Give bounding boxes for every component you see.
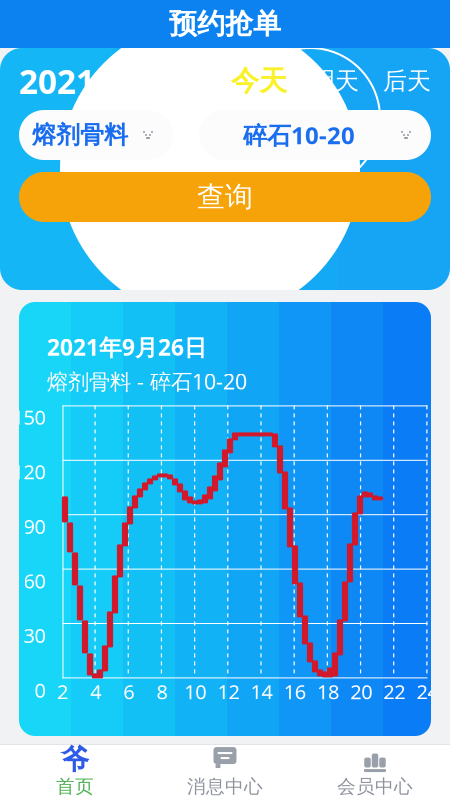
staticText: 14 [251,678,273,705]
button[interactable]: 碎石10-20 [199,110,431,160]
button[interactable]: 会员中心 [300,745,450,800]
staticText: 会员中心 [337,775,413,798]
staticText: 6 [123,678,134,705]
staticText: 16 [284,678,306,705]
staticText: 120 [12,458,45,485]
button[interactable]: 查询 [19,172,431,222]
staticText: 20 [350,678,372,705]
staticText: 熔剂骨料 [32,120,128,150]
staticText: 10 [184,678,206,705]
staticText: 18 [317,678,339,705]
staticText: 2021.9.26 [19,59,170,103]
staticText: 今天 [231,64,287,98]
staticText: 24 [416,678,438,705]
staticText: 查询 [197,180,253,214]
staticText: 30 [23,622,45,649]
button[interactable]: 后天 [359,64,431,98]
staticText: 0 [34,677,45,703]
staticText: 150 [12,404,45,430]
button[interactable]: 熔剂骨料 [19,110,173,160]
staticText: 后天 [383,66,431,96]
staticText: 爷 [61,742,89,777]
staticText: 2021年9月26日 [47,332,207,362]
staticText: 首页 [56,775,94,798]
staticText: 熔剂骨料 - 碎石10-20 [47,367,247,395]
button[interactable]: 消息中心 [150,745,300,800]
button[interactable]: 爷 [0,745,150,800]
staticText: 消息中心 [187,775,263,798]
staticText: 12 [217,678,239,705]
staticText: 明天 [311,66,359,96]
staticText: 22 [383,678,405,705]
staticText: 2 [57,678,68,705]
button[interactable]: 2021.9.26 [19,59,196,103]
staticText: 90 [23,513,45,539]
staticText: 预约抢单 [169,7,281,41]
staticText: 60 [23,567,45,594]
staticText: 4 [90,678,101,705]
staticText: 碎石10-20 [243,119,355,151]
button[interactable]: 今天 [231,64,287,98]
staticText: 8 [156,678,167,705]
button[interactable]: 明天 [287,64,359,98]
